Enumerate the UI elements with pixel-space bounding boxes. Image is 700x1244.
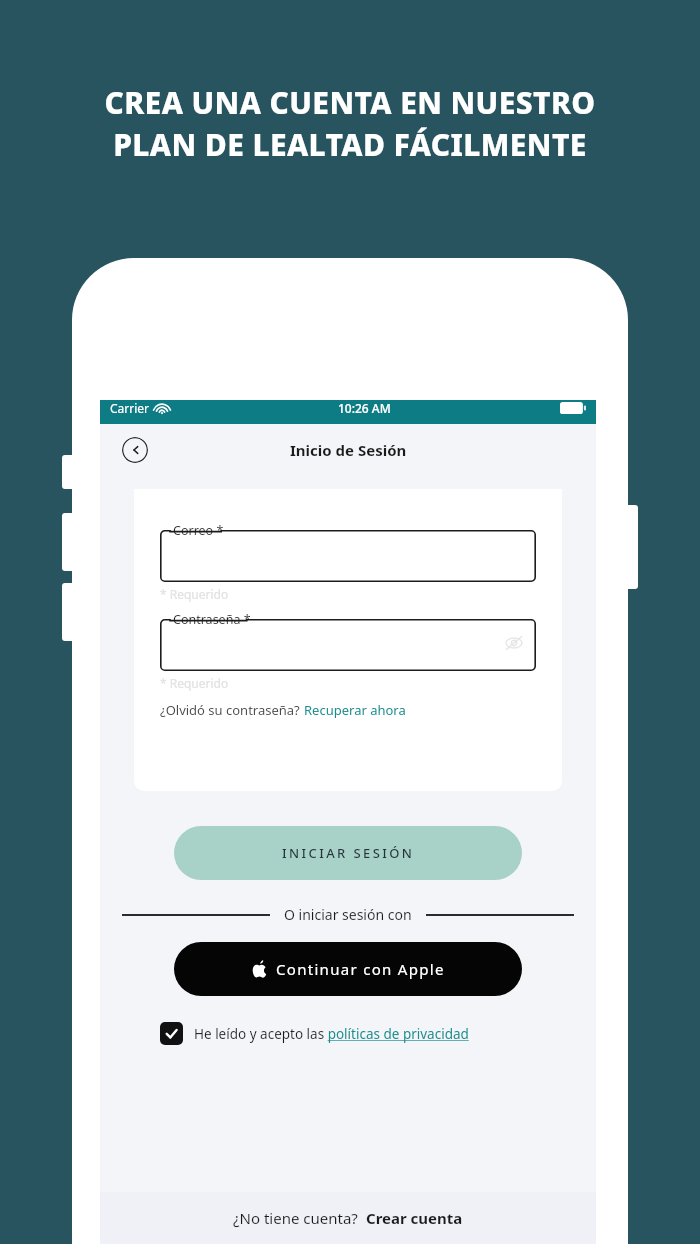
button[interactable]: INICIAR SESIÓN [174, 826, 522, 880]
staticText: O iniciar sesión con [284, 905, 412, 924]
staticText: Recuperar ahora [304, 701, 406, 719]
staticText: Correo * [173, 522, 224, 539]
staticText: ¿Olvidó su contraseña? [160, 701, 304, 719]
staticText: Contraseña * [173, 611, 251, 628]
button[interactable] [160, 522, 536, 582]
staticText: Inicio de Sesión [290, 440, 407, 460]
staticText: Crear cuenta [366, 1208, 463, 1228]
button[interactable]: He leído y acepto las políticas de priva… [160, 1022, 536, 1045]
staticText: ¿No tiene cuenta? [233, 1208, 366, 1228]
staticText: CREA UNA CUENTA EN NUESTRO PLAN DE LEALT… [0, 82, 700, 165]
button[interactable] [160, 611, 536, 671]
staticText: He leído y acepto las políticas de priva… [194, 1025, 469, 1043]
staticText: * Requerido [160, 586, 229, 602]
staticText: * Requerido [160, 675, 229, 691]
button[interactable]: ¿Olvidó su contraseña? [160, 701, 406, 719]
staticText: 10:26 AM [338, 400, 391, 416]
button[interactable]: Back [122, 437, 148, 463]
staticText: Continuar con Apple [276, 959, 445, 979]
button[interactable]: Continuar con Apple [174, 942, 522, 996]
staticText: Carrier [110, 400, 150, 416]
button[interactable]: ¿No tiene cuenta? [100, 1192, 596, 1244]
staticText: INICIAR SESIÓN [282, 844, 415, 862]
